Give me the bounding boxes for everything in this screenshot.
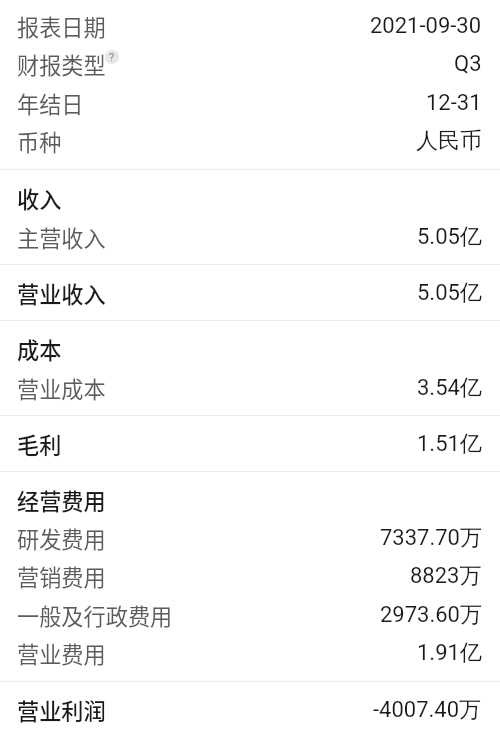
staticText: 成本 xyxy=(17,333,62,365)
staticText: 年结日 xyxy=(17,87,84,119)
button[interactable]: 研发费用 xyxy=(0,519,500,557)
button[interactable]: 报表日期 xyxy=(0,7,500,45)
button[interactable]: 成本 xyxy=(0,330,500,368)
staticText: 主营收入 xyxy=(17,221,106,253)
staticText: 8823万 xyxy=(410,562,482,590)
button[interactable]: 收入 xyxy=(0,179,500,217)
staticText: 财报类型 xyxy=(17,48,106,80)
staticText: 毛利 xyxy=(17,428,62,460)
button[interactable]: 营业费用 xyxy=(0,634,500,672)
button[interactable]: Help xyxy=(105,50,119,64)
staticText: 币种 xyxy=(17,125,62,157)
button[interactable]: 币种 xyxy=(0,122,500,160)
staticText: Q3 xyxy=(454,51,482,77)
staticText: -4007.40万 xyxy=(373,696,482,724)
button[interactable]: 营销费用 xyxy=(0,557,500,595)
staticText: 3.54亿 xyxy=(417,374,482,402)
staticText: 营销费用 xyxy=(17,560,106,592)
staticText: 2973.60万 xyxy=(380,601,482,629)
staticText: 7337.70万 xyxy=(380,524,482,552)
staticText: 1.91亿 xyxy=(417,639,482,667)
staticText: 5.05亿 xyxy=(417,279,482,307)
button[interactable]: 财报类型 xyxy=(0,45,500,83)
staticText: 人民币 xyxy=(416,127,482,155)
staticText: 12-31 xyxy=(426,90,482,116)
staticText: ? xyxy=(109,51,115,64)
staticText: 5.05亿 xyxy=(417,223,482,251)
staticText: 经营费用 xyxy=(17,484,106,516)
button[interactable]: 营业收入 xyxy=(0,274,500,312)
button[interactable]: 主营收入 xyxy=(0,218,500,256)
button[interactable]: 营业成本 xyxy=(0,369,500,407)
staticText: 研发费用 xyxy=(17,522,106,554)
staticText: 2021-09-30 xyxy=(370,13,482,39)
staticText: 一般及行政费用 xyxy=(17,599,173,631)
button[interactable]: 年结日 xyxy=(0,84,500,122)
button[interactable]: 营业利润 xyxy=(0,691,500,729)
staticText: 营业成本 xyxy=(17,372,106,404)
staticText: 营业收入 xyxy=(17,277,106,309)
staticText: 报表日期 xyxy=(17,10,106,42)
staticText: 1.51亿 xyxy=(417,430,482,458)
button[interactable]: 经营费用 xyxy=(0,481,500,519)
button[interactable]: 一般及行政费用 xyxy=(0,596,500,634)
staticText: 收入 xyxy=(17,182,62,214)
button[interactable]: 毛利 xyxy=(0,425,500,463)
staticText: 营业利润 xyxy=(17,694,106,726)
staticText: 营业费用 xyxy=(17,637,106,669)
